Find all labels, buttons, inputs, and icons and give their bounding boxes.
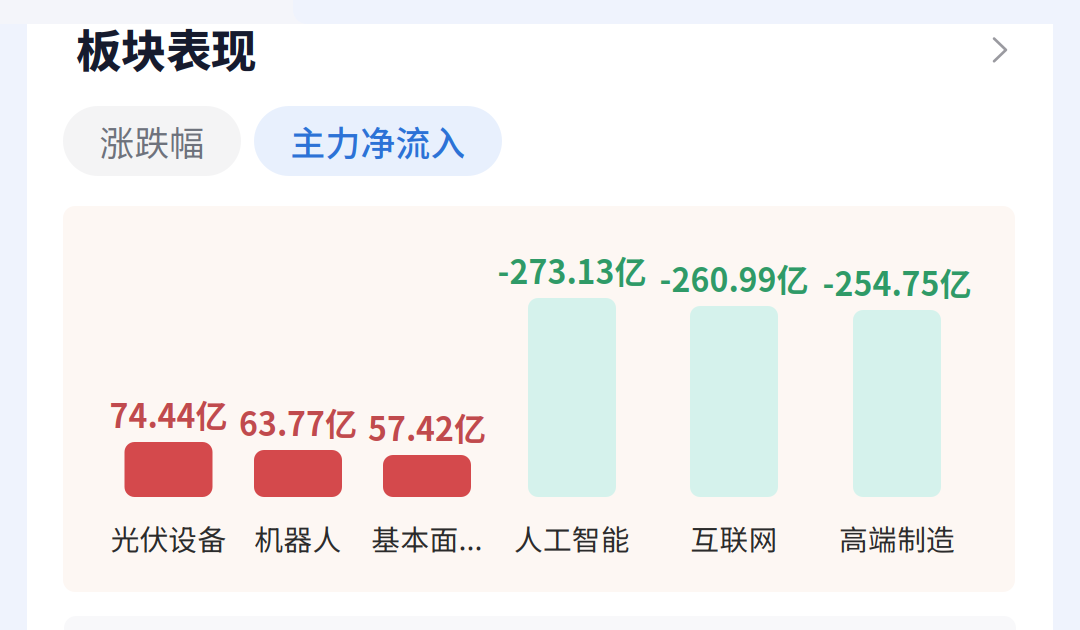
staticText: 63.77亿 [239, 399, 357, 445]
staticText: 人工智能 [514, 517, 630, 559]
staticText: 机器人 [254, 517, 341, 559]
button[interactable]: 机器人 63.77亿 [234, 240, 362, 570]
staticText: 涨跌幅 [99, 116, 204, 166]
staticText: 基本面... [371, 517, 482, 559]
button[interactable]: 板块表现，查看更多 [76, 13, 1026, 83]
staticText: -254.75亿 [822, 259, 971, 305]
staticText: 主力净流入 [290, 116, 465, 166]
button[interactable]: 高端制造 -254.75亿 [833, 240, 961, 570]
button[interactable]: 基本面... 57.42亿 [363, 240, 491, 570]
staticText: 光伏设备 [110, 517, 226, 559]
staticText: 高端制造 [839, 517, 955, 559]
button[interactable]: 涨跌幅 [63, 106, 241, 176]
staticText: -273.13亿 [497, 247, 646, 293]
button[interactable]: 光伏设备 74.44亿 [104, 240, 232, 570]
staticText: -260.99亿 [659, 255, 808, 301]
staticText: 57.42亿 [368, 404, 486, 450]
button[interactable]: 人工智能 -273.13亿 [508, 240, 636, 570]
button[interactable]: 主力净流入 [254, 106, 502, 176]
staticText: 互联网 [690, 517, 777, 559]
staticText: 板块表现 [76, 15, 256, 81]
button[interactable]: 互联网 -260.99亿 [670, 240, 798, 570]
staticText: 74.44亿 [109, 391, 227, 437]
